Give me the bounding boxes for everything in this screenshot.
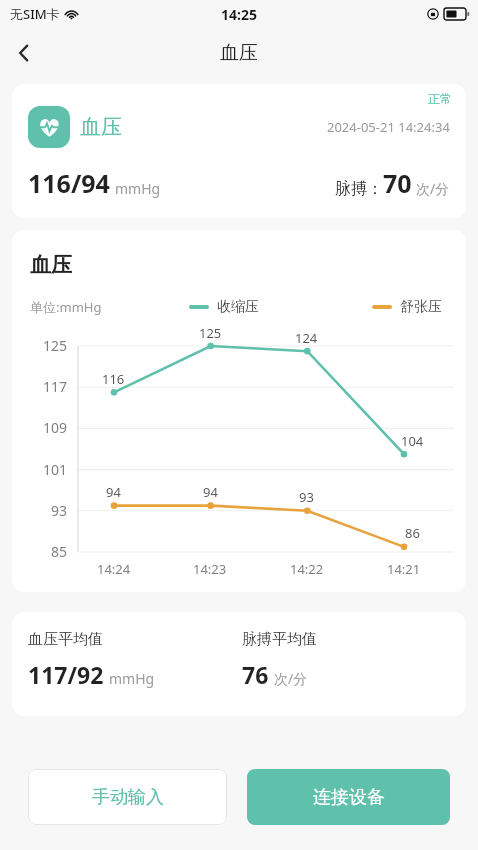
staticText: 脉搏平均值 (242, 630, 317, 649)
staticText: 血压 (30, 252, 72, 278)
staticText: 124 (295, 329, 318, 347)
staticText: 109 (43, 418, 68, 437)
staticText: 93 (299, 488, 314, 506)
staticText: 101 (43, 460, 68, 479)
staticText: 次/分 (416, 179, 450, 198)
staticText: 86 (405, 524, 420, 542)
button[interactable]: 手动输入 (28, 769, 227, 825)
button[interactable]: Back (0, 29, 48, 77)
staticText: 手动输入 (92, 786, 164, 809)
staticText: 116/94 (28, 166, 110, 200)
button[interactable]: 连接设备 (247, 769, 450, 825)
staticText: 次/分 (274, 669, 308, 688)
staticText: 104 (401, 432, 424, 450)
staticText: 血压 (220, 41, 258, 65)
staticText: 117/92 (28, 659, 104, 690)
staticText: 85 (51, 542, 68, 561)
staticText: 14:21 (387, 560, 421, 578)
staticText: 125 (199, 324, 222, 342)
staticText: 116 (102, 370, 125, 388)
staticText: 无SIM卡 (10, 5, 60, 23)
staticText: mmHg (109, 669, 155, 688)
staticText: 93 (51, 501, 68, 520)
staticText: 94 (106, 483, 121, 501)
staticText: 125 (43, 336, 68, 355)
staticText: 血压平均值 (28, 630, 103, 649)
staticText: 117 (43, 377, 68, 396)
staticText: 舒张压 (400, 298, 442, 316)
button[interactable]: 血压平均值 (12, 612, 466, 716)
staticText: 94 (203, 483, 218, 501)
staticText: 76 (242, 659, 269, 690)
staticText: 脉搏： (335, 179, 383, 199)
staticText: 14:22 (290, 560, 324, 578)
staticText: mmHg (115, 179, 161, 198)
staticText: 正常 (428, 91, 452, 106)
staticText: 血压 (80, 114, 122, 140)
staticText: 70 (383, 166, 412, 200)
staticText: 收缩压 (217, 298, 259, 316)
staticText: 2024-05-21 14:24:34 (327, 118, 450, 136)
staticText: 14:25 (221, 5, 257, 24)
button[interactable]: 正常 (12, 84, 466, 218)
staticText: 14:24 (97, 560, 131, 578)
staticText: 连接设备 (313, 786, 385, 809)
staticText: 单位:mmHg (30, 298, 102, 316)
staticText: 14:23 (193, 560, 227, 578)
